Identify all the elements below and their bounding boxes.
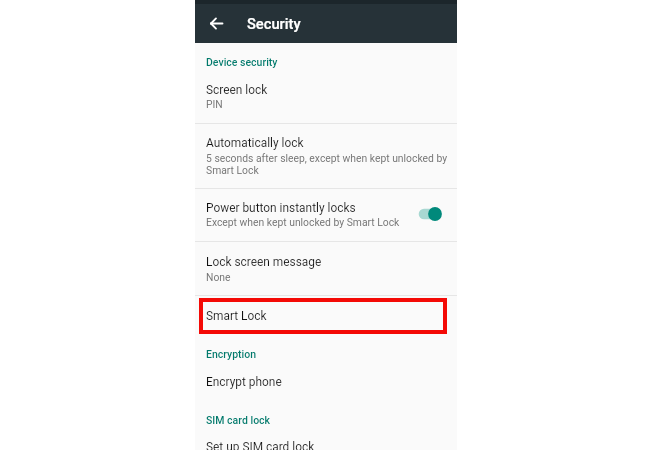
staticText: Encryption <box>206 348 257 360</box>
button[interactable]: Smart Lock <box>199 298 447 334</box>
button[interactable]: Power button instantly locks <box>195 189 457 241</box>
staticText: SIM card lock <box>206 414 271 426</box>
staticText: Device security <box>206 56 278 68</box>
button[interactable]: Set up SIM card lock <box>195 432 457 450</box>
staticText: Smart Lock <box>206 309 267 323</box>
staticText: Lock screen message <box>206 255 322 269</box>
staticText: Security <box>247 15 301 32</box>
staticText: Power button instantly locks <box>206 201 356 215</box>
staticText: PIN <box>206 98 223 110</box>
button[interactable]: Automatically lock <box>195 124 457 188</box>
button[interactable]: Power button instantly locks, on <box>412 202 444 226</box>
button[interactable]: Screen lock <box>195 77 457 123</box>
staticText: Set up SIM card lock <box>206 440 315 450</box>
staticText: Encrypt phone <box>206 375 282 389</box>
button[interactable]: Encrypt phone <box>195 366 457 396</box>
staticText: 5 seconds after sleep, except when kept … <box>206 152 452 176</box>
staticText: Screen lock <box>206 83 268 97</box>
staticText: Except when kept unlocked by Smart Lock <box>206 216 400 228</box>
button[interactable]: Back <box>202 9 230 37</box>
button[interactable]: Lock screen message <box>195 242 457 287</box>
staticText: None <box>206 271 231 283</box>
staticText: Automatically lock <box>206 136 304 150</box>
